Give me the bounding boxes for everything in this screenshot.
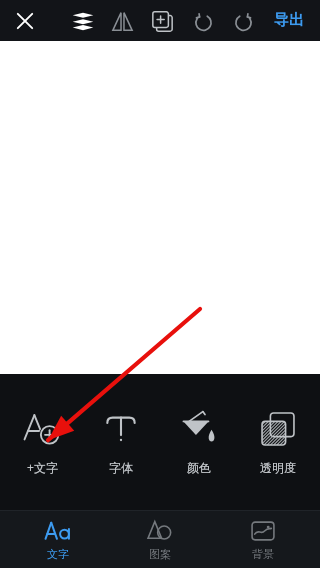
button[interactable]: 背景 <box>218 514 308 565</box>
button[interactable]: Duplicate <box>145 4 179 38</box>
staticText: 导出 <box>274 11 304 30</box>
staticText: +文字 <box>27 459 58 475</box>
button[interactable]: Mirror <box>105 4 139 38</box>
button[interactable]: 透明度 <box>242 402 314 483</box>
button[interactable]: 文字 <box>13 514 103 565</box>
staticText: 透明度 <box>260 460 296 475</box>
staticText: 背景 <box>252 547 274 561</box>
button[interactable]: 颜色 <box>163 402 235 483</box>
staticText: 文字 <box>47 547 69 561</box>
staticText: 颜色 <box>187 460 211 475</box>
button[interactable]: Close <box>8 4 42 38</box>
button[interactable]: +文字 <box>6 401 78 483</box>
button[interactable]: 字体 <box>85 402 157 483</box>
button[interactable]: Redo <box>226 4 260 38</box>
button[interactable]: Undo <box>186 4 220 38</box>
button[interactable]: 图案 <box>115 514 205 565</box>
button[interactable]: Layers <box>66 4 100 38</box>
staticText: 字体 <box>109 460 133 475</box>
staticText: 图案 <box>149 547 171 561</box>
button[interactable]: 导出 <box>268 7 310 34</box>
